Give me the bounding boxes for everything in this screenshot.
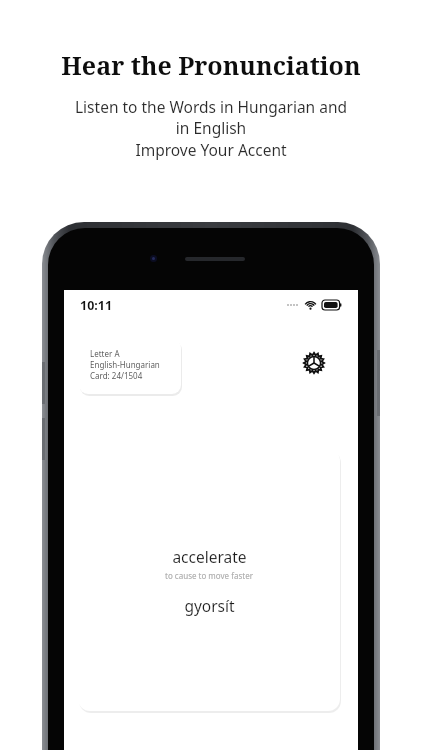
button[interactable]: Letter A — [79, 339, 181, 394]
staticText: Card: 24/1504 — [90, 370, 143, 381]
staticText: Hear the Pronunciation — [61, 48, 361, 82]
staticText: gyorsít — [184, 595, 235, 616]
button[interactable]: Settings — [298, 347, 330, 379]
staticText: accelerate — [172, 546, 247, 567]
button[interactable]: accelerate — [78, 449, 340, 711]
staticText: English-Hungarian — [90, 359, 160, 370]
staticText: 10:11 — [80, 297, 113, 314]
staticText: Letter A — [90, 348, 120, 359]
staticText: Listen to the Words in Hungarian and in … — [75, 96, 347, 161]
staticText: to cause to move faster — [165, 570, 253, 581]
